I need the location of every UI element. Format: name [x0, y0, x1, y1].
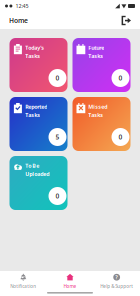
staticText: Tasks — [25, 111, 40, 119]
staticText: 5 — [55, 132, 59, 142]
button[interactable]: Notification — [0, 274, 47, 289]
button[interactable]: Today's — [9, 38, 67, 92]
staticText: Home — [9, 16, 28, 25]
staticText: 0 — [118, 132, 122, 142]
staticText: 0 — [118, 73, 122, 83]
button[interactable]: Future — [72, 38, 130, 92]
staticText: Today's — [25, 44, 44, 51]
staticText: Missed — [88, 103, 107, 110]
button[interactable]: Reported — [9, 97, 67, 151]
button[interactable]: To Be — [9, 156, 67, 210]
staticText: Tasks — [25, 52, 40, 60]
staticText: ? — [115, 274, 118, 281]
staticText: 0 — [55, 73, 59, 83]
staticText: Home — [63, 283, 76, 289]
button[interactable]: Missed — [72, 97, 130, 151]
staticText: Tasks — [88, 111, 103, 119]
staticText: Future — [88, 44, 104, 51]
staticText: Uploaded — [25, 170, 49, 178]
button[interactable]: Log out — [122, 16, 131, 25]
button[interactable]: Home — [47, 274, 93, 289]
staticText: Reported — [25, 103, 47, 110]
staticText: Notification — [10, 283, 36, 289]
staticText: Help & Support — [100, 283, 133, 289]
staticText: 12:45 — [15, 2, 28, 10]
button[interactable]: ? — [93, 274, 140, 289]
staticText: To Be — [25, 162, 39, 169]
staticText: 0 — [55, 191, 59, 201]
staticText: Tasks — [88, 52, 103, 60]
